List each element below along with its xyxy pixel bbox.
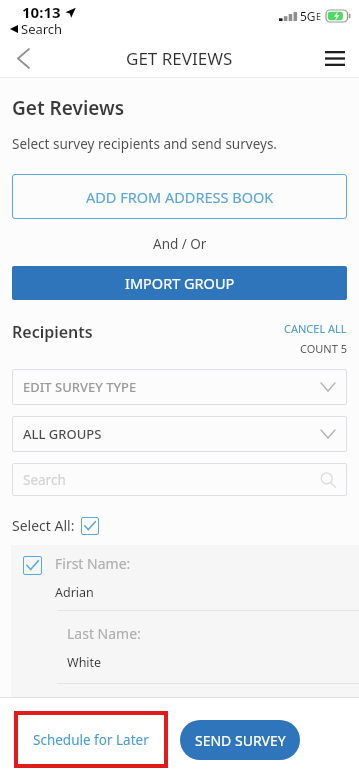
button[interactable]: SEND SURVEY xyxy=(180,720,300,760)
staticText: CANCEL ALL xyxy=(284,321,347,336)
staticText: First Name: xyxy=(55,554,131,573)
staticText: Last Name: xyxy=(67,624,141,643)
staticText: 5G xyxy=(300,8,316,24)
staticText: Get Reviews xyxy=(12,95,125,121)
staticText: Search xyxy=(21,20,63,38)
staticText: Adrian xyxy=(55,584,94,601)
staticText: SEND SURVEY xyxy=(195,731,286,750)
button[interactable]: CANCEL ALL xyxy=(284,321,347,336)
button[interactable]: Menu xyxy=(316,39,354,77)
staticText: EDIT SURVEY TYPE xyxy=(23,378,137,396)
staticText: IMPORT GROUP xyxy=(125,273,235,293)
staticText: White xyxy=(67,654,102,671)
staticText: And / Or xyxy=(153,235,207,253)
button[interactable]: Back xyxy=(5,40,41,76)
staticText: E xyxy=(316,10,322,22)
button[interactable]: IMPORT GROUP xyxy=(12,266,347,300)
staticText: Schedule for Later xyxy=(33,731,149,749)
staticText: 10:13 xyxy=(22,2,61,22)
button[interactable]: Schedule for Later xyxy=(14,711,168,768)
staticText: GET REVIEWS xyxy=(126,47,233,70)
button[interactable]: Select recipient xyxy=(23,556,42,575)
staticText: Select survey recipients and send survey… xyxy=(12,135,277,153)
staticText: Select All: xyxy=(12,516,75,535)
button[interactable]: Select all xyxy=(81,517,99,535)
staticText: Search xyxy=(23,471,66,489)
staticText: ADD FROM ADDRESS BOOK xyxy=(86,187,274,207)
button[interactable]: ADD FROM ADDRESS BOOK xyxy=(12,174,347,219)
staticText: COUNT 5 xyxy=(300,341,347,356)
button[interactable]: ALL GROUPS xyxy=(12,416,347,452)
staticText: ALL GROUPS xyxy=(23,425,102,443)
button[interactable]: Search xyxy=(12,463,347,496)
staticText: Recipients xyxy=(12,321,93,343)
button[interactable]: EDIT SURVEY TYPE xyxy=(12,369,347,405)
